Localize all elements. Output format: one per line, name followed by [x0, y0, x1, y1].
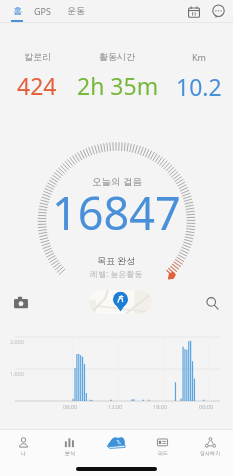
button[interactable]: 분석 — [46, 430, 92, 462]
staticText: 목표 완성 — [97, 254, 136, 266]
button[interactable]: GPS — [22, 0, 62, 23]
staticText: 12:00 — [108, 403, 123, 410]
staticText: 2,000 — [10, 338, 25, 345]
button[interactable]: Activity — [92, 430, 139, 462]
button[interactable]: Km — [159, 51, 233, 102]
button[interactable]: Camera — [9, 291, 33, 315]
staticText: 2h 35m — [77, 70, 157, 101]
staticText: 06:00 — [63, 403, 78, 410]
button[interactable]: 홈 — [0, 0, 37, 23]
staticText: 16847 — [52, 182, 181, 243]
staticText: 10.2 — [176, 71, 222, 102]
staticText: 분석 — [65, 450, 75, 456]
staticText: 18:00 — [153, 403, 168, 410]
button[interactable]: 당사하기 — [186, 430, 233, 462]
staticText: 홈 — [13, 5, 22, 16]
button[interactable]: 칼로리 — [0, 51, 77, 101]
staticText: 나 — [21, 450, 26, 456]
staticText: 레벨: 높은활동 — [90, 268, 143, 279]
staticText: 00:00 — [199, 403, 214, 410]
button[interactable]: 나 — [0, 430, 46, 462]
staticText: 활동시간 — [99, 51, 135, 62]
button[interactable]: 피드 — [139, 430, 186, 462]
staticText: 피드 — [158, 450, 168, 456]
staticText: Km — [192, 51, 206, 63]
staticText: 당사하기 — [200, 450, 220, 456]
button[interactable]: Search — [200, 291, 224, 315]
button[interactable]: Map route — [89, 290, 152, 314]
button[interactable]: 운동 — [56, 0, 96, 23]
staticText: 칼로리 — [24, 51, 51, 62]
staticText: 운동 — [67, 5, 85, 16]
button[interactable]: 활동시간 — [77, 51, 157, 101]
staticText: 1,000 — [10, 370, 25, 377]
staticText: 오늘의 걸음 — [92, 175, 142, 188]
staticText: 424 — [17, 70, 57, 101]
button[interactable]: Messages — [206, 0, 230, 23]
staticText: GPS — [34, 5, 51, 17]
button[interactable]: Calendar — [182, 0, 206, 23]
